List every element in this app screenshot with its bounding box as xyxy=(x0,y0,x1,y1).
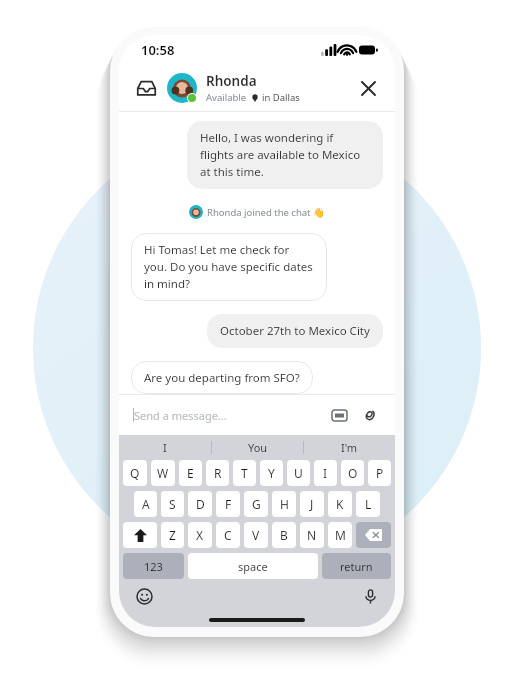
button[interactable]: S xyxy=(161,491,184,517)
button[interactable]: D xyxy=(188,491,212,517)
button[interactable]: I xyxy=(314,460,337,486)
button[interactable]: T xyxy=(233,460,256,486)
staticText: M xyxy=(335,527,346,543)
button[interactable]: Hello, I was wondering if flights are av… xyxy=(187,121,383,189)
staticText: Send a message... xyxy=(134,408,327,423)
button[interactable]: R xyxy=(206,460,229,486)
staticText: S xyxy=(169,496,176,512)
staticText: J xyxy=(310,496,314,512)
staticText: H xyxy=(280,496,289,512)
staticText: in Dallas xyxy=(262,91,300,104)
staticText: L xyxy=(365,496,372,512)
staticText: Available xyxy=(206,91,247,104)
staticText: You xyxy=(248,440,268,455)
button[interactable]: M xyxy=(328,522,352,548)
staticText: Hi Tomas! Let me check for you. Do you h… xyxy=(144,242,314,292)
button[interactable]: October 27th to Mexico City xyxy=(207,314,383,348)
button[interactable]: Z xyxy=(161,522,184,548)
staticText: X xyxy=(196,527,204,543)
staticText: P xyxy=(376,465,384,481)
button[interactable]: B xyxy=(272,522,296,548)
staticText: O xyxy=(348,465,358,481)
button[interactable]: GIF xyxy=(327,403,351,427)
staticText: space xyxy=(238,559,268,574)
staticText: U xyxy=(294,465,303,481)
button[interactable]: Q xyxy=(123,460,147,486)
button[interactable]: C xyxy=(216,522,240,548)
staticText: E xyxy=(187,465,194,481)
button[interactable]: You xyxy=(212,435,303,460)
button[interactable]: I xyxy=(119,435,211,460)
button[interactable]: W xyxy=(151,460,175,486)
button[interactable]: K xyxy=(328,491,352,517)
button[interactable]: X xyxy=(188,522,212,548)
button[interactable]: Y xyxy=(260,460,283,486)
staticText: Rhonda xyxy=(206,72,257,90)
staticText: Are you departing from SFO? xyxy=(144,370,300,385)
button[interactable]: V xyxy=(244,522,268,548)
staticText: I xyxy=(163,440,167,455)
staticText: R xyxy=(214,465,222,481)
staticText: D xyxy=(196,496,205,512)
button[interactable]: return xyxy=(322,553,391,579)
button[interactable]: Inbox xyxy=(131,73,161,103)
button[interactable]: space xyxy=(188,553,318,579)
button[interactable]: L xyxy=(356,491,380,517)
button[interactable]: J xyxy=(300,491,324,517)
button[interactable]: Emoji xyxy=(133,585,155,607)
staticText: 123 xyxy=(144,559,163,574)
staticText: V xyxy=(252,527,260,543)
staticText: B xyxy=(280,527,288,543)
staticText: A xyxy=(142,496,150,512)
staticText: Rhonda joined the chat 👋 xyxy=(207,206,325,219)
button[interactable]: Hi Tomas! Let me check for you. Do you h… xyxy=(131,233,327,301)
staticText: October 27th to Mexico City xyxy=(220,323,370,339)
button[interactable]: O xyxy=(341,460,364,486)
button[interactable]: E xyxy=(179,460,202,486)
staticText: Y xyxy=(268,465,275,481)
button[interactable]: I'm xyxy=(304,435,395,460)
button[interactable]: Send a message... xyxy=(133,395,381,435)
staticText: C xyxy=(224,527,232,543)
button[interactable]: 123 xyxy=(123,553,184,579)
button[interactable]: Shift xyxy=(123,522,157,548)
button[interactable]: U xyxy=(287,460,310,486)
staticText: F xyxy=(225,496,232,512)
staticText: return xyxy=(340,559,373,574)
button[interactable]: Voice input xyxy=(359,585,381,607)
staticText: Z xyxy=(169,527,176,543)
button[interactable]: P xyxy=(368,460,391,486)
staticText: N xyxy=(307,527,317,543)
staticText: K xyxy=(336,496,344,512)
staticText: G xyxy=(252,496,261,512)
staticText: Hello, I was wondering if flights are av… xyxy=(200,130,370,180)
button[interactable]: G xyxy=(244,491,268,517)
button[interactable]: Backspace xyxy=(356,522,391,548)
staticText: T xyxy=(241,465,248,481)
staticText: I'm xyxy=(341,440,358,455)
button[interactable]: Are you departing from SFO? xyxy=(131,361,313,394)
button[interactable]: A xyxy=(134,491,157,517)
staticText: W xyxy=(157,465,169,481)
staticText: Q xyxy=(130,465,140,481)
button[interactable]: F xyxy=(216,491,240,517)
button[interactable]: Close xyxy=(353,73,383,103)
staticText: 10:58 xyxy=(141,41,175,59)
button[interactable]: H xyxy=(272,491,296,517)
button[interactable]: Attach file xyxy=(357,403,381,427)
button[interactable]: N xyxy=(300,522,324,548)
staticText: I xyxy=(323,465,328,481)
